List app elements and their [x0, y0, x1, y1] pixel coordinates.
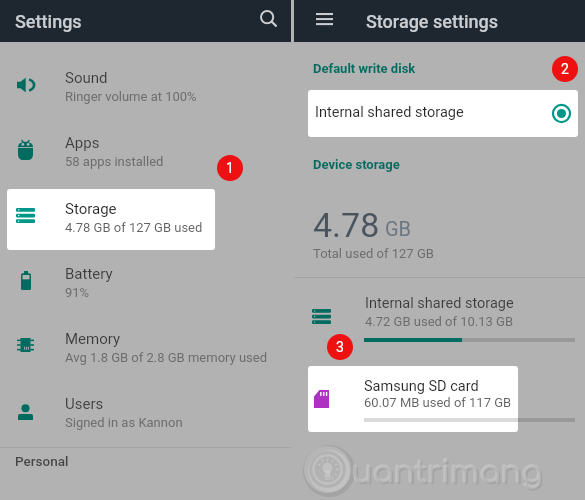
staticText: Samsung SD card: [364, 378, 479, 395]
staticText: Sound: [65, 69, 108, 87]
staticText: Default write disk: [313, 61, 416, 76]
staticText: Internal shared storage: [315, 104, 464, 121]
button[interactable]: Sound: [0, 60, 291, 122]
staticText: Storage settings: [366, 11, 499, 32]
staticText: Device storage: [313, 157, 400, 172]
staticText: GB: [385, 217, 412, 240]
staticText: 4.78 GB of 127 GB used: [65, 220, 203, 235]
button[interactable]: Apps: [0, 125, 291, 187]
button[interactable]: Memory: [0, 321, 291, 383]
staticText: 3: [336, 339, 344, 355]
staticText: 4.78: [313, 205, 380, 245]
button[interactable]: Internal shared storage: [294, 287, 585, 349]
staticText: Total used of 127 GB: [313, 246, 434, 261]
staticText: Storage: [65, 200, 117, 218]
staticText: 2: [561, 61, 569, 77]
staticText: Users: [65, 395, 104, 413]
staticText: Ringer volume at 100%: [65, 89, 197, 104]
button[interactable]: Storage: [7, 189, 215, 250]
staticText: Personal: [15, 453, 69, 469]
staticText: Avg 1.8 GB of 2.8 GB memory used: [65, 350, 268, 365]
staticText: uantrimang: [351, 455, 542, 490]
staticText: Battery: [65, 265, 113, 283]
button[interactable]: Menu: [309, 6, 339, 36]
staticText: Internal shared storage: [365, 295, 514, 312]
staticText: Memory: [65, 330, 121, 348]
staticText: 4.72 GB used of 10.13 GB: [365, 314, 514, 329]
staticText: 60.07 MB used of 117 GB: [364, 395, 512, 410]
staticText: Signed in as Kannon: [65, 415, 183, 430]
button[interactable]: Samsung SD card: [308, 366, 518, 432]
button[interactable]: Internal shared storage: [308, 90, 578, 137]
button[interactable]: Battery: [0, 256, 291, 318]
staticText: Settings: [15, 11, 82, 32]
staticText: 91%: [65, 285, 90, 300]
button[interactable]: Search: [247, 0, 289, 42]
staticText: Apps: [65, 134, 100, 152]
staticText: 58 apps installed: [65, 154, 164, 169]
staticText: uantrimang: [353, 457, 544, 492]
staticText: 1: [226, 160, 234, 176]
button[interactable]: Users: [0, 386, 291, 448]
